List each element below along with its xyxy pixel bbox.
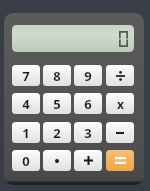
button[interactable]: 8 bbox=[43, 65, 71, 86]
button[interactable]: 1 bbox=[12, 122, 40, 143]
button[interactable]: 6 bbox=[74, 93, 102, 114]
staticText: 1 bbox=[22, 124, 30, 142]
staticText: 2 bbox=[53, 124, 61, 142]
button[interactable]: 5 bbox=[43, 93, 71, 114]
button[interactable]: 3 bbox=[74, 122, 102, 143]
staticText: 4 bbox=[22, 95, 30, 113]
button[interactable]: 7 bbox=[12, 65, 40, 86]
button[interactable]: Decimal point bbox=[43, 150, 71, 171]
staticText: 9 bbox=[84, 67, 92, 85]
button[interactable]: Divide bbox=[106, 65, 134, 86]
button[interactable]: 9 bbox=[74, 65, 102, 86]
button[interactable]: Minus bbox=[106, 122, 134, 143]
button[interactable]: Multiply bbox=[106, 93, 134, 114]
staticText: 7 bbox=[22, 67, 30, 85]
staticText: 6 bbox=[84, 95, 92, 113]
button[interactable]: 4 bbox=[12, 93, 40, 114]
staticText: 8 bbox=[53, 67, 61, 85]
staticText: x bbox=[117, 96, 124, 112]
staticText: 5 bbox=[53, 95, 61, 113]
staticText: 3 bbox=[84, 124, 92, 142]
button[interactable]: Equals bbox=[106, 150, 134, 171]
button[interactable]: 2 bbox=[43, 122, 71, 143]
button[interactable]: Plus bbox=[74, 150, 102, 171]
staticText: 0 bbox=[22, 152, 30, 170]
button[interactable]: 0 bbox=[12, 150, 40, 171]
